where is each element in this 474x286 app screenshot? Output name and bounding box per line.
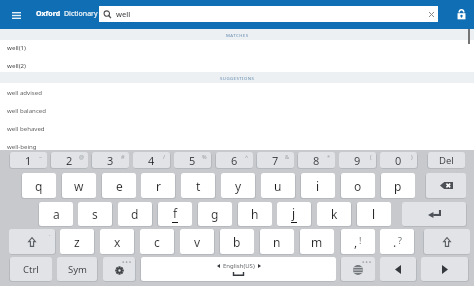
button[interactable]: e	[102, 173, 136, 198]
staticText: 7	[272, 153, 279, 168]
staticText: h	[251, 206, 259, 222]
staticText: 3	[107, 153, 114, 168]
button[interactable]: Shift	[9, 229, 55, 254]
button[interactable]: v	[180, 229, 214, 254]
staticText: well behaved	[7, 124, 45, 132]
button[interactable]: h	[238, 202, 272, 226]
button[interactable]: j	[277, 202, 311, 226]
staticText: well(1)	[7, 43, 26, 51]
button[interactable]: well balanced	[0, 101, 474, 119]
staticText: ,	[354, 234, 358, 250]
button[interactable]: w	[62, 173, 96, 198]
button[interactable]: g	[198, 202, 232, 226]
button[interactable]: .	[380, 229, 414, 254]
button[interactable]: 7	[257, 152, 294, 168]
button[interactable]: well(1)	[0, 38, 474, 56]
staticText: u	[274, 178, 282, 194]
button[interactable]: a	[39, 202, 73, 226]
button[interactable]: x	[100, 229, 134, 254]
staticText: x	[114, 234, 121, 250]
button[interactable]: y	[221, 173, 255, 198]
staticText: well(2)	[7, 61, 26, 69]
button[interactable]: 9	[339, 152, 376, 168]
staticText: o	[354, 178, 362, 194]
button[interactable]: p	[381, 173, 415, 198]
staticText: 9	[354, 153, 361, 168]
button[interactable]: b	[220, 229, 254, 254]
staticText: l	[372, 206, 376, 222]
button[interactable]: 6	[216, 152, 253, 168]
button[interactable]: Privacy lock	[447, 0, 474, 29]
button[interactable]: o	[341, 173, 375, 198]
staticText: 1	[25, 153, 32, 168]
button[interactable]: u	[261, 173, 295, 198]
button[interactable]: 2	[51, 152, 88, 168]
staticText: .	[49, 230, 51, 237]
button[interactable]: q	[22, 173, 56, 198]
button[interactable]: k	[317, 202, 351, 226]
button[interactable]: n	[260, 229, 294, 254]
staticText: v	[194, 234, 201, 250]
staticText: g	[211, 206, 219, 222]
staticText: c	[154, 234, 160, 250]
staticText: well advised	[7, 88, 42, 96]
staticText: ~	[39, 153, 43, 160]
staticText: #	[121, 153, 125, 160]
button[interactable]: z	[60, 229, 94, 254]
button[interactable]: c	[140, 229, 174, 254]
button[interactable]: well behaved	[0, 119, 474, 137]
staticText: w	[74, 178, 84, 194]
button[interactable]: well-being	[0, 137, 474, 155]
staticText: p	[394, 178, 402, 194]
button[interactable]: Sym	[57, 257, 97, 281]
staticText: a	[53, 206, 60, 222]
button[interactable]: Keyboard settings	[103, 257, 135, 281]
staticText: SUGGESTIONS	[220, 75, 255, 81]
button[interactable]: d	[118, 202, 152, 226]
button[interactable]: Ctrl	[10, 257, 52, 281]
button[interactable]: 1	[10, 152, 47, 168]
button[interactable]: l	[357, 202, 391, 226]
button[interactable]: Move cursor right	[421, 257, 468, 281]
staticText: &	[285, 153, 290, 160]
staticText: 8	[313, 153, 320, 168]
staticText: t	[196, 178, 201, 194]
staticText: ^	[245, 153, 249, 160]
button[interactable]: well	[99, 6, 438, 22]
staticText: 4	[148, 153, 155, 168]
button[interactable]: s	[78, 202, 112, 226]
button[interactable]: well(2)	[0, 56, 474, 74]
button[interactable]: Move cursor left	[380, 257, 416, 281]
staticText: 5	[189, 153, 196, 168]
button[interactable]: Enter	[402, 202, 466, 226]
button[interactable]: ,	[341, 229, 375, 254]
button[interactable]: Backspace	[426, 173, 466, 198]
staticText: English(US)	[223, 262, 255, 270]
button[interactable]: Space	[141, 257, 336, 281]
button[interactable]: 0	[380, 152, 417, 168]
button[interactable]: r	[141, 173, 175, 198]
button[interactable]: 4	[133, 152, 170, 168]
button[interactable]: 8	[298, 152, 335, 168]
staticText: well-being	[7, 142, 37, 150]
staticText: m	[311, 234, 323, 250]
button[interactable]: Del	[428, 152, 465, 168]
staticText: j	[292, 205, 296, 221]
button[interactable]: Shift	[424, 229, 470, 254]
button[interactable]: m	[300, 229, 334, 254]
button[interactable]: Clear query	[424, 6, 438, 22]
staticText: well	[116, 9, 131, 19]
staticText: (	[370, 153, 372, 160]
button[interactable]: Open navigation menu	[8, 7, 24, 23]
button[interactable]: t	[181, 173, 215, 198]
staticText: 0	[395, 153, 402, 168]
staticText: /	[163, 153, 166, 160]
button[interactable]: f	[158, 202, 192, 226]
button[interactable]: 3	[92, 152, 129, 168]
button[interactable]: well advised	[0, 83, 474, 101]
staticText: Oxford	[36, 9, 61, 19]
staticText: ?	[398, 234, 402, 246]
button[interactable]: i	[301, 173, 335, 198]
button[interactable]: Change language	[341, 257, 375, 281]
button[interactable]: 5	[174, 152, 211, 168]
